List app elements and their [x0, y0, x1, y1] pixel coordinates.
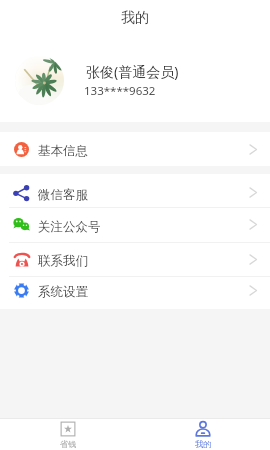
staticText: 微信客服 [38, 187, 88, 203]
staticText: 我的 [121, 9, 149, 27]
button[interactable]: Mine [135, 419, 270, 450]
button[interactable]: Savings [0, 419, 135, 450]
button[interactable]: 系统设置 [0, 273, 270, 307]
button[interactable]: 张俊(普通会员) [0, 33, 270, 122]
button[interactable]: 联系我们 [0, 242, 270, 276]
staticText: 我的 [195, 439, 212, 449]
staticText: 张俊(普通会员) [86, 62, 179, 81]
staticText: 133****9632 [84, 83, 156, 99]
staticText: 联系我们 [38, 253, 88, 269]
button[interactable]: 关注公众号 [0, 207, 270, 242]
staticText: 关注公众号 [38, 219, 101, 235]
staticText: 系统设置 [38, 284, 88, 300]
button[interactable]: 微信客服 [0, 176, 270, 209]
staticText: 基本信息 [38, 143, 88, 159]
button[interactable]: 基本信息 [0, 132, 270, 166]
staticText: 省钱 [60, 439, 77, 449]
